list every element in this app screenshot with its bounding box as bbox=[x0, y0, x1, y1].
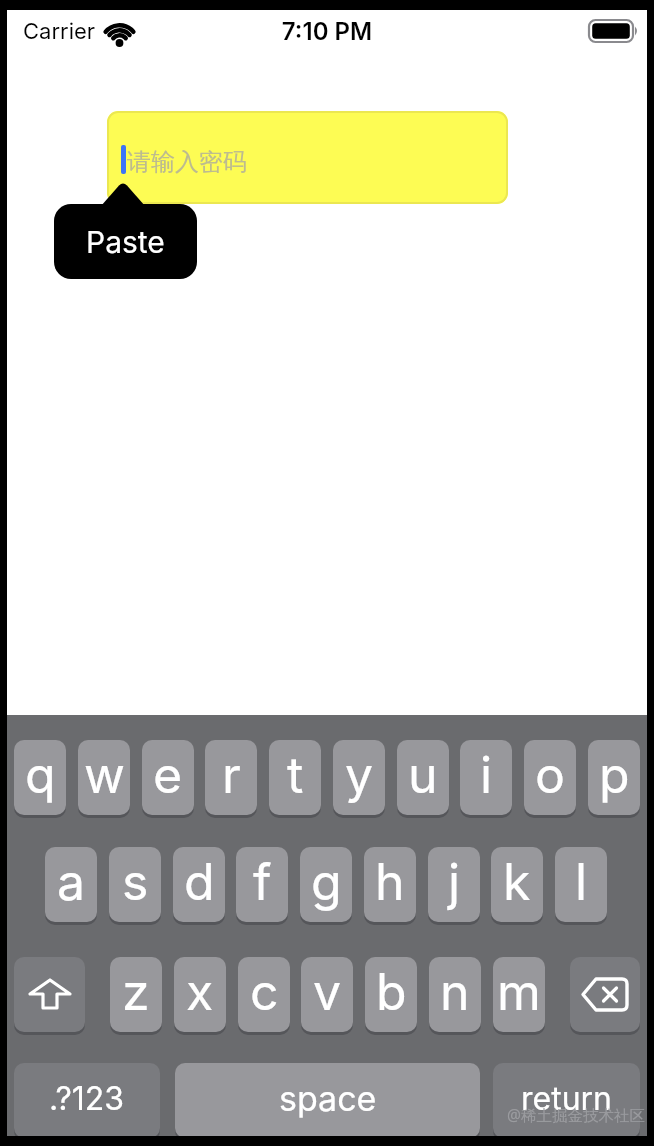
staticText: e bbox=[153, 745, 183, 805]
button[interactable]: p bbox=[588, 740, 640, 815]
staticText: m bbox=[497, 962, 541, 1022]
button[interactable] bbox=[107, 111, 508, 204]
button[interactable]: b bbox=[365, 957, 417, 1032]
staticText: d bbox=[184, 852, 215, 912]
button[interactable]: k bbox=[491, 847, 543, 922]
staticText: j bbox=[448, 852, 461, 912]
staticText: 请输入密码 bbox=[127, 147, 247, 177]
staticText: b bbox=[376, 962, 407, 1022]
button[interactable]: t bbox=[269, 740, 321, 815]
button[interactable] bbox=[14, 957, 85, 1032]
button[interactable]: Paste bbox=[54, 204, 197, 279]
button[interactable]: l bbox=[555, 847, 607, 922]
button[interactable]: x bbox=[174, 957, 226, 1032]
staticText: .?123 bbox=[49, 1079, 125, 1118]
button[interactable]: i bbox=[460, 740, 512, 815]
button[interactable]: a bbox=[45, 847, 97, 922]
button[interactable]: u bbox=[397, 740, 449, 815]
staticText: p bbox=[599, 745, 630, 805]
staticText: y bbox=[345, 745, 374, 805]
button[interactable]: h bbox=[364, 847, 416, 922]
button[interactable]: space bbox=[175, 1063, 480, 1138]
staticText: n bbox=[440, 962, 470, 1022]
staticText: v bbox=[313, 962, 342, 1022]
staticText: o bbox=[535, 745, 565, 805]
button[interactable]: .?123 bbox=[14, 1063, 160, 1138]
button[interactable]: e bbox=[142, 740, 194, 815]
button[interactable]: c bbox=[238, 957, 290, 1032]
staticText: x bbox=[186, 962, 214, 1022]
staticText: Carrier bbox=[23, 18, 96, 45]
button[interactable]: r bbox=[205, 740, 257, 815]
staticText: @稀土掘金技术社区 bbox=[507, 1104, 645, 1125]
button[interactable] bbox=[570, 957, 640, 1032]
button[interactable]: z bbox=[110, 957, 162, 1032]
staticText: Paste bbox=[86, 224, 165, 260]
staticText: return bbox=[521, 1079, 613, 1118]
button[interactable]: return bbox=[493, 1063, 640, 1138]
button[interactable]: v bbox=[301, 957, 353, 1032]
staticText: a bbox=[57, 852, 86, 912]
button[interactable]: y bbox=[333, 740, 385, 815]
staticText: q bbox=[25, 745, 56, 805]
button[interactable]: o bbox=[524, 740, 576, 815]
button[interactable]: m bbox=[493, 957, 545, 1032]
staticText: f bbox=[253, 852, 272, 912]
staticText: w bbox=[84, 745, 125, 805]
button[interactable]: n bbox=[429, 957, 481, 1032]
staticText: u bbox=[408, 745, 438, 805]
button[interactable]: q bbox=[14, 740, 66, 815]
button[interactable]: f bbox=[236, 847, 288, 922]
staticText: space bbox=[279, 1078, 377, 1119]
button[interactable]: g bbox=[300, 847, 352, 922]
staticText: 7:10 PM bbox=[0, 17, 654, 46]
staticText: c bbox=[250, 962, 279, 1022]
button[interactable]: d bbox=[173, 847, 225, 922]
staticText: t bbox=[287, 745, 304, 805]
staticText: z bbox=[122, 962, 150, 1022]
staticText: s bbox=[122, 852, 149, 912]
button[interactable]: j bbox=[428, 847, 480, 922]
staticText: i bbox=[480, 745, 493, 805]
staticText: g bbox=[311, 852, 342, 912]
staticText: l bbox=[575, 852, 588, 912]
staticText: k bbox=[503, 852, 531, 912]
button[interactable]: s bbox=[109, 847, 161, 922]
staticText: r bbox=[222, 745, 241, 805]
button[interactable]: w bbox=[78, 740, 130, 815]
staticText: h bbox=[375, 852, 405, 912]
